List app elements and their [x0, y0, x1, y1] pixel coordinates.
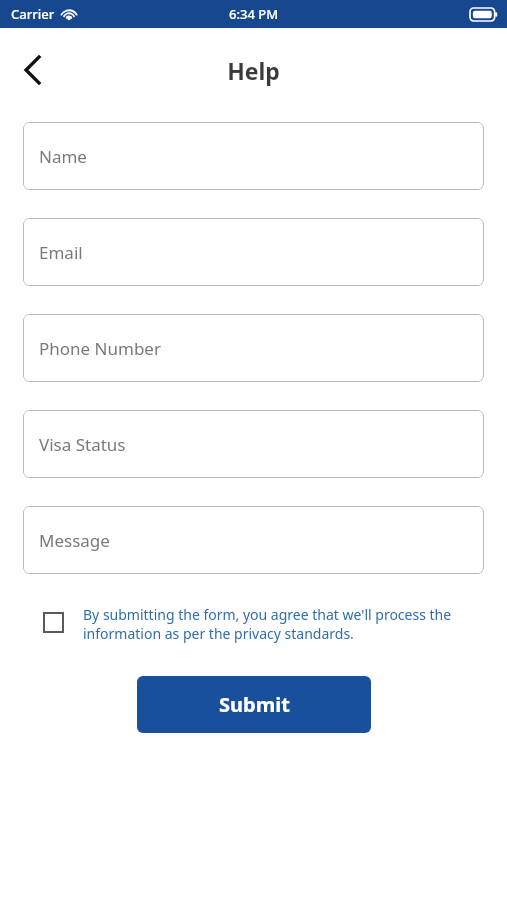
staticText: Phone Number [39, 337, 161, 360]
button[interactable]: Email [23, 218, 484, 286]
staticText: Visa Status [39, 433, 126, 456]
button[interactable]: Submit [137, 676, 371, 733]
button[interactable]: Message [23, 506, 484, 574]
staticText: Carrier [11, 5, 55, 23]
button[interactable]: Phone Number [23, 314, 484, 382]
button[interactable]: Name [23, 122, 484, 190]
staticText: By submitting the form, you agree that w… [83, 605, 484, 643]
staticText: Message [39, 529, 110, 552]
staticText: 6:34 PM [229, 5, 279, 23]
staticText: Submit [219, 691, 290, 718]
button[interactable]: By submitting the form, you agree that w… [23, 605, 484, 643]
button[interactable]: Back [10, 48, 54, 92]
staticText: Name [39, 145, 87, 168]
staticText: Email [39, 241, 83, 264]
button[interactable]: Visa Status [23, 410, 484, 478]
staticText: Help [227, 55, 280, 86]
